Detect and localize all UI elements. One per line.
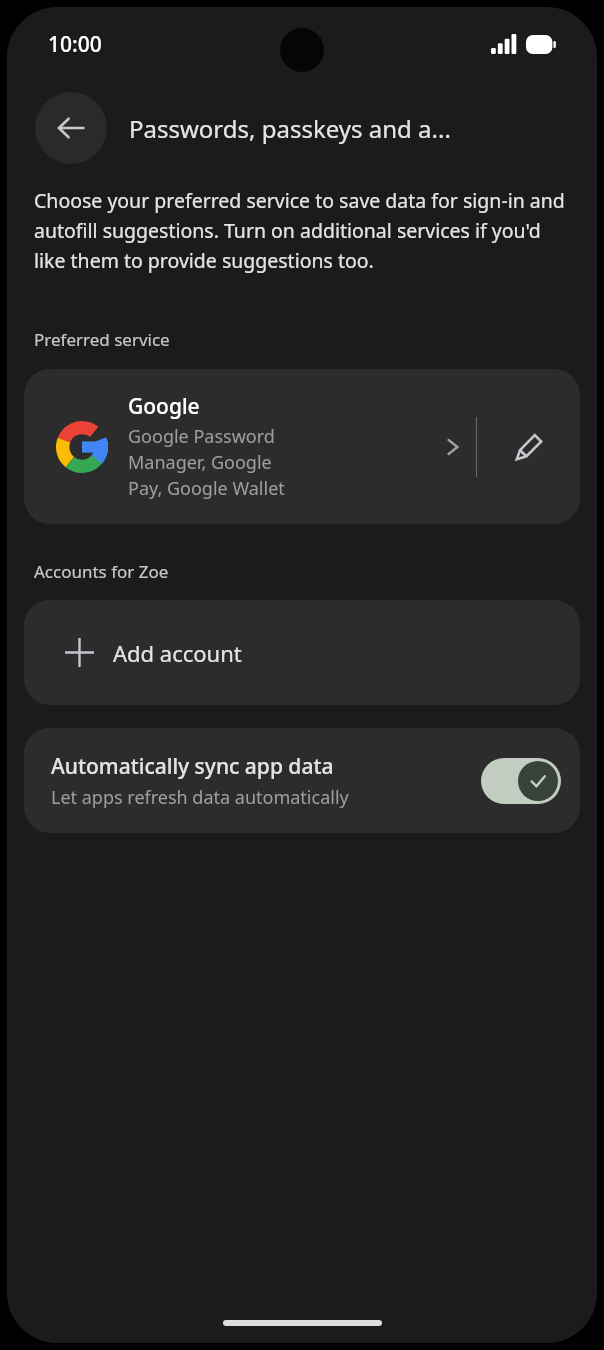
staticText: Add account (113, 638, 242, 668)
staticText: Automatically sync app data (51, 752, 334, 781)
button[interactable]: Automatically sync app data (24, 728, 580, 833)
button[interactable]: Back (35, 92, 107, 164)
staticText: Let apps refresh data automatically (51, 785, 349, 810)
staticText: 10:00 (48, 30, 102, 59)
button[interactable]: Google (24, 369, 476, 524)
staticText: Passwords, passkeys and a... (129, 112, 451, 145)
button[interactable]: Add account (24, 600, 580, 705)
button[interactable]: Edit (477, 369, 580, 524)
staticText: Accounts for Zoe (34, 560, 169, 583)
staticText: Google Password Manager, Google Pay, Goo… (128, 424, 298, 501)
staticText: Preferred service (34, 328, 170, 351)
staticText: Choose your preferred service to save da… (34, 187, 570, 273)
staticText: Google (128, 392, 200, 421)
